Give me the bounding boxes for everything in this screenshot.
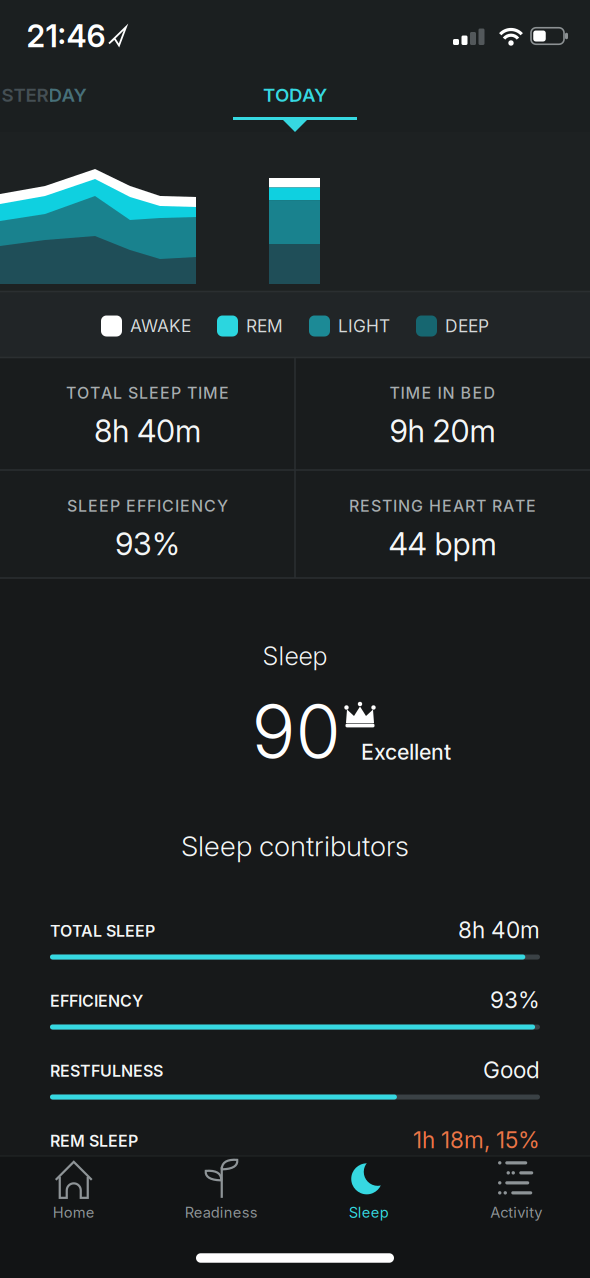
staticText: TOTAL SLEEP (50, 922, 155, 940)
staticText: 93% (115, 526, 180, 562)
staticText: Activity (490, 1204, 542, 1221)
staticText: EFFICIENCY (50, 992, 143, 1010)
staticText: Good (483, 1057, 540, 1083)
staticText: Sleep contributors (181, 829, 409, 862)
staticText: 44 bpm (388, 526, 496, 562)
staticText: T I M E I N B E D (389, 384, 495, 402)
staticText: TODAY (263, 84, 327, 106)
staticText: Excellent (361, 739, 451, 765)
button[interactable]: Activity (446, 1158, 586, 1222)
staticText: R E S T I N G H E A R T R A T E (349, 497, 536, 515)
staticText: 8h 40m (94, 413, 201, 449)
staticText: Sleep (349, 1204, 389, 1221)
staticText: Sleep (262, 641, 327, 671)
staticText: 90 (251, 688, 340, 774)
staticText: REM SLEEP (50, 1132, 138, 1150)
staticText: T O T A L S L E E P T I M E (66, 384, 229, 402)
staticText: Readiness (185, 1204, 258, 1221)
staticText: LIGHT (338, 316, 390, 336)
staticText: 93% (490, 987, 540, 1013)
staticText: REM (246, 316, 283, 336)
button[interactable]: Yesterday (0, 75, 99, 115)
staticText: Home (53, 1204, 95, 1221)
staticText: 21:46 (26, 18, 105, 54)
button[interactable]: Sleep (299, 1158, 439, 1222)
staticText: RESTFULNESS (50, 1062, 163, 1080)
staticText: DEEP (445, 316, 489, 336)
staticText: AWAKE (130, 316, 191, 336)
button[interactable]: Readiness (151, 1158, 291, 1222)
button[interactable]: TODAY (233, 75, 357, 115)
staticText: 9h 20m (389, 413, 495, 449)
button[interactable]: Home (4, 1158, 144, 1222)
staticText: S L E E P E F F I C I E N C Y (67, 497, 228, 515)
staticText: 1h 18m, 15% (413, 1127, 540, 1153)
staticText: STER (1, 84, 48, 106)
staticText: DAY (48, 84, 86, 106)
staticText: 8h 40m (458, 917, 540, 943)
